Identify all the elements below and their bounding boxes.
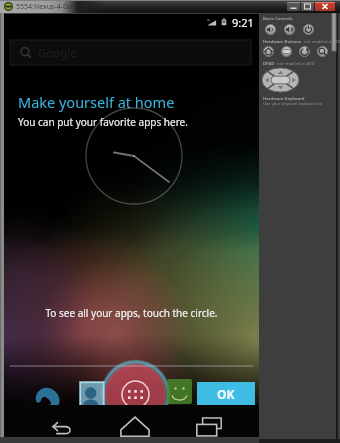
button[interactable]: Emulator control <box>303 24 314 35</box>
button[interactable]: Window button <box>315 2 335 11</box>
staticText: Google <box>38 45 77 61</box>
button[interactable]: Window button <box>287 2 300 11</box>
button[interactable]: Phone <box>31 386 61 416</box>
button[interactable]: Play Store <box>167 379 192 404</box>
staticText: To see all your apps, touch the circle. <box>4 306 259 320</box>
button[interactable]: Emulator control <box>317 46 328 57</box>
staticText: 5554:Nexus-4-Google <box>16 2 87 12</box>
button[interactable]: Emulator control <box>265 24 276 35</box>
staticText: Hardware Keyboard <box>263 96 337 102</box>
button[interactable]: Back <box>46 410 78 442</box>
button[interactable]: Emulator control <box>299 46 310 57</box>
button[interactable]: Emulator control <box>281 46 292 57</box>
button[interactable]: People <box>79 381 105 407</box>
button[interactable]: DPAD <box>262 68 299 92</box>
staticText: 9:21 <box>232 15 254 30</box>
button[interactable]: Window button <box>301 2 314 11</box>
button[interactable]: Emulator control <box>284 24 295 35</box>
staticText: not enabled in AVD <box>304 39 340 45</box>
staticText: Use your physical keyboard to provide in… <box>263 101 337 107</box>
staticText: Make yourself at home <box>18 92 175 112</box>
staticText: not enabled in AVD <box>277 61 315 67</box>
staticText: OK <box>217 386 235 402</box>
staticText: You can put your favorite apps here. <box>18 115 188 129</box>
staticText: Hardware Buttons <box>263 39 302 45</box>
staticText: DPAD <box>263 61 275 67</box>
button[interactable]: Emulator control <box>263 46 274 57</box>
button[interactable]: Apps <box>121 380 150 409</box>
button[interactable]: OK <box>197 382 255 406</box>
staticText: Basic Controls <box>263 16 337 22</box>
button[interactable]: Recent apps <box>193 410 225 442</box>
button[interactable]: Home <box>119 410 151 442</box>
button[interactable]: Google <box>10 40 251 65</box>
